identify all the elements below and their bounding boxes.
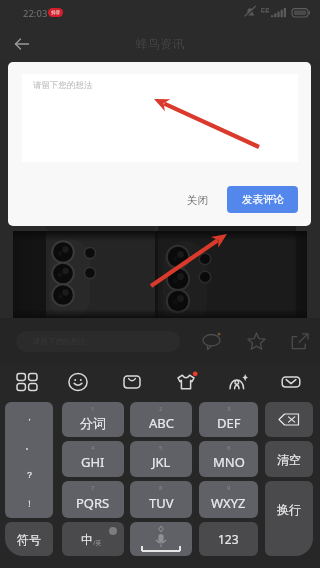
staticText: ？	[25, 469, 34, 480]
button[interactable]: 4	[62, 441, 124, 477]
staticText: 抖音	[51, 10, 60, 16]
button[interactable]: 2	[130, 402, 192, 437]
staticText: 1	[91, 405, 95, 413]
button[interactable]: Share	[285, 327, 313, 355]
staticText: 换行	[277, 502, 301, 517]
button[interactable]: 清空	[265, 441, 313, 477]
staticText: 7	[91, 484, 95, 492]
staticText: 清空	[277, 452, 301, 467]
button[interactable]: 8	[130, 481, 192, 518]
button[interactable]: 3	[199, 402, 258, 437]
button[interactable]: 中	[62, 522, 124, 556]
staticText: 9	[227, 484, 231, 492]
button[interactable]: Mail	[277, 369, 305, 395]
button[interactable]: 发表评论	[227, 186, 298, 213]
staticText: 蜂鸟资讯	[136, 36, 184, 51]
button[interactable]	[130, 522, 192, 556]
button[interactable]: Shop	[118, 369, 146, 395]
staticText: 分词	[80, 415, 106, 431]
staticText: JKL	[152, 453, 171, 471]
staticText: 123	[218, 531, 239, 547]
button[interactable]: Apps	[13, 369, 41, 395]
staticText: DEF	[217, 414, 241, 432]
button[interactable]: Clothes	[172, 369, 200, 395]
staticText: 3	[227, 405, 231, 413]
button[interactable]: Comment	[197, 327, 225, 355]
staticText: 中	[81, 532, 93, 547]
staticText: 2	[159, 405, 163, 413]
staticText: ABC	[149, 414, 174, 432]
staticText: MNO	[213, 453, 245, 471]
button[interactable]: Back	[8, 30, 36, 58]
staticText: 符号	[17, 532, 41, 547]
staticText: 4	[91, 444, 95, 452]
staticText: GHI	[81, 453, 105, 471]
button[interactable]: Effects	[224, 369, 252, 395]
button[interactable]: 6	[199, 441, 258, 477]
button[interactable]: Favorite	[242, 327, 270, 355]
staticText: 请留下您的想法	[33, 80, 93, 91]
button[interactable]	[265, 402, 313, 437]
button[interactable]: 关闭	[174, 186, 220, 214]
staticText: TUV	[149, 494, 174, 512]
staticText: WXYZ	[211, 494, 246, 512]
staticText: PQRS	[76, 494, 110, 512]
button[interactable]: Emoji	[64, 369, 92, 395]
staticText: 。	[25, 440, 34, 451]
button[interactable]: 7	[62, 481, 124, 518]
staticText: 5	[159, 444, 163, 452]
button[interactable]: 1	[62, 402, 124, 437]
staticText: 22:03	[23, 7, 48, 20]
staticText: 6	[227, 444, 231, 452]
button[interactable]: 9	[199, 481, 258, 518]
button[interactable]: 请留下您的想法	[22, 74, 298, 162]
staticText: 发表评论	[242, 193, 284, 206]
staticText: 关闭	[187, 194, 208, 207]
staticText: ！	[25, 498, 34, 509]
staticText: 8	[159, 484, 163, 492]
button[interactable]: ，	[5, 402, 53, 518]
staticText: /英	[93, 539, 102, 547]
staticText: ，	[25, 411, 34, 422]
button[interactable]: 换行	[265, 481, 313, 556]
button[interactable]: 符号	[5, 522, 53, 556]
button[interactable]: 5	[130, 441, 192, 477]
button[interactable]: 123	[199, 522, 258, 556]
